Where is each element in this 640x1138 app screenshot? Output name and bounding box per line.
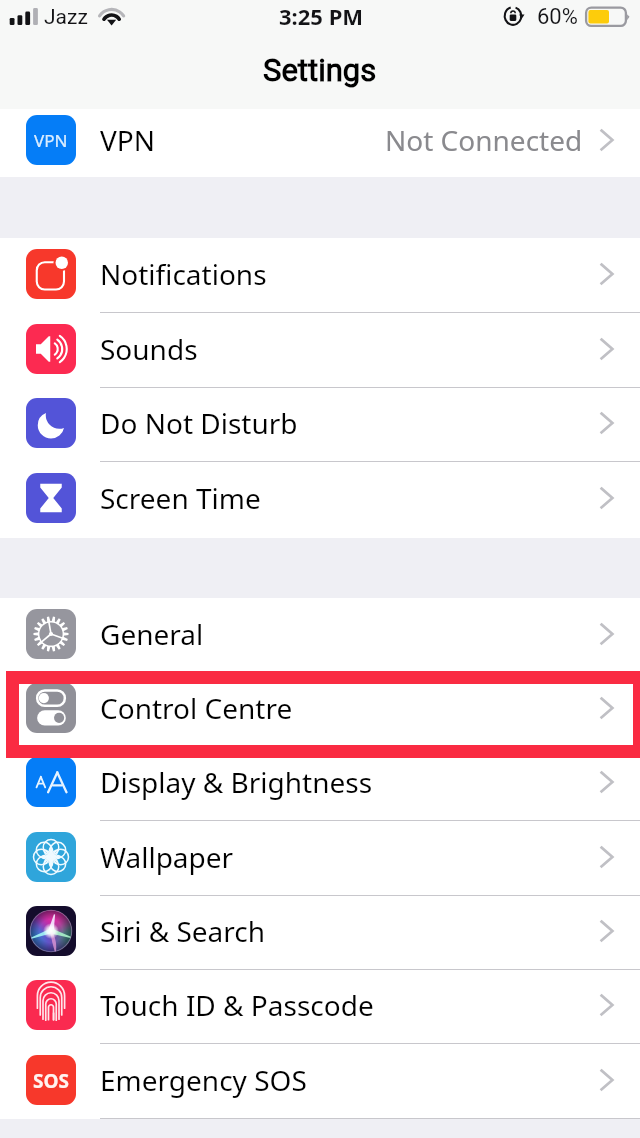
staticText: Do Not Disturb <box>100 404 298 442</box>
button[interactable]: Display & Brightness <box>0 747 640 821</box>
staticText: 60% <box>537 4 578 30</box>
staticText: 3:25 PM <box>279 1 364 31</box>
staticText: VPN <box>34 129 68 152</box>
button[interactable]: SOS <box>0 1044 640 1119</box>
staticText: Wallpaper <box>100 838 234 876</box>
staticText: Settings <box>263 52 377 88</box>
button[interactable]: Sounds <box>0 313 640 388</box>
button[interactable]: Notifications <box>0 238 640 313</box>
staticText: Display & Brightness <box>100 763 373 801</box>
staticText: SOS <box>33 1068 69 1094</box>
staticText: Touch ID & Passcode <box>100 986 374 1024</box>
button[interactable]: Touch ID & Passcode <box>0 970 640 1044</box>
button[interactable]: VPN <box>0 109 640 176</box>
button[interactable]: General <box>0 598 640 673</box>
staticText: Control Centre <box>100 689 293 727</box>
button[interactable]: Wallpaper <box>0 821 640 896</box>
staticText: Not Connected <box>385 121 583 159</box>
staticText: Jazz <box>44 5 88 30</box>
button[interactable]: Screen Time <box>0 462 640 538</box>
button[interactable]: Control Centre <box>0 673 640 747</box>
staticText: Screen Time <box>100 479 261 517</box>
staticText: Sounds <box>100 330 198 368</box>
button[interactable]: Siri & Search <box>0 896 640 970</box>
staticText: Notifications <box>100 255 267 293</box>
staticText: VPN <box>100 121 156 159</box>
staticText: Siri & Search <box>100 912 266 950</box>
button[interactable]: Do Not Disturb <box>0 388 640 462</box>
staticText: Emergency SOS <box>100 1061 307 1099</box>
staticText: General <box>100 615 204 653</box>
